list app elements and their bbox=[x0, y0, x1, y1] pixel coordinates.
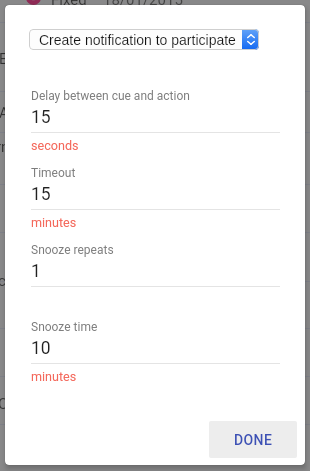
button[interactable]: Create notification to participate bbox=[29, 29, 259, 50]
staticText: 15 bbox=[31, 184, 51, 205]
staticText: Snooze repeats bbox=[31, 243, 114, 257]
button[interactable]: DONE bbox=[209, 421, 297, 458]
other: Choose option bbox=[242, 29, 259, 50]
staticText: minutes bbox=[31, 215, 77, 230]
staticText: 1 bbox=[31, 261, 41, 282]
staticText: Timeout bbox=[31, 166, 76, 180]
staticText: E bbox=[0, 50, 8, 68]
staticText: rn bbox=[0, 138, 10, 156]
staticText: 18/01/2015 bbox=[103, 0, 183, 9]
staticText: 10 bbox=[31, 338, 51, 359]
staticText: C bbox=[0, 395, 8, 413]
staticText: minutes bbox=[31, 369, 77, 384]
staticText: c bbox=[0, 272, 6, 290]
staticText: Delay between cue and action bbox=[31, 89, 190, 103]
staticText: Snooze time bbox=[31, 320, 98, 334]
staticText: seconds bbox=[31, 138, 79, 153]
staticText: 15 bbox=[31, 107, 51, 128]
staticText: Create notification to participate bbox=[39, 32, 236, 48]
staticText: A bbox=[0, 104, 9, 122]
staticText: Fixed bbox=[51, 0, 87, 9]
staticText: DONE bbox=[234, 432, 273, 448]
